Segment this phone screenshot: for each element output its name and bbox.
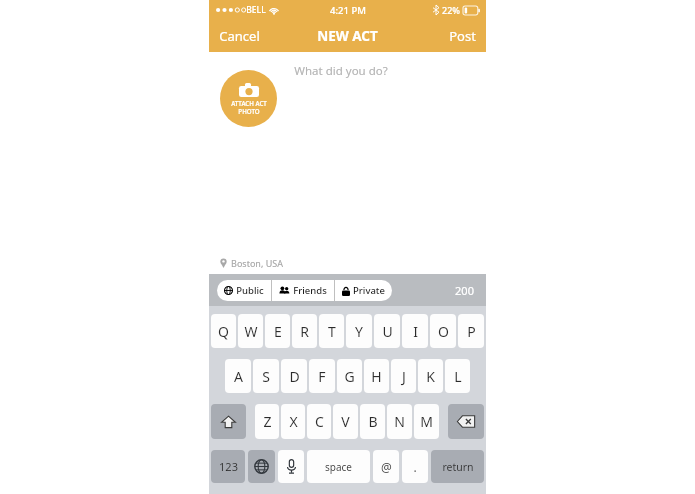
button[interactable]: Public — [217, 280, 271, 301]
button[interactable]: O — [430, 314, 456, 348]
button[interactable]: G — [337, 359, 362, 393]
staticText: R — [300, 322, 309, 341]
button[interactable]: C — [307, 404, 331, 439]
staticText: 200 — [455, 283, 474, 298]
button[interactable]: D — [281, 359, 307, 393]
staticText: S — [262, 367, 270, 386]
staticText: U — [382, 322, 393, 341]
button[interactable]: return — [431, 450, 484, 483]
staticText: T — [328, 322, 336, 341]
button[interactable]: P — [458, 314, 484, 348]
button[interactable]: L — [445, 359, 470, 393]
button[interactable]: U — [374, 314, 400, 348]
staticText: W — [244, 322, 258, 341]
button[interactable]: Q — [211, 314, 236, 348]
button[interactable]: Attach act photo — [220, 70, 277, 127]
button[interactable]: Friends — [272, 280, 334, 301]
staticText: Private — [353, 284, 385, 297]
staticText: 123 — [219, 459, 238, 474]
staticText: E — [274, 322, 282, 341]
staticText: 22% — [442, 4, 460, 16]
staticText: PHOTO — [238, 107, 260, 115]
button[interactable]: Z — [255, 404, 279, 439]
staticText: NEW ACT — [317, 27, 378, 45]
button[interactable]: K — [418, 359, 443, 393]
staticText: A — [234, 367, 243, 386]
staticText: Q — [218, 322, 229, 341]
button[interactable]: F — [309, 359, 335, 393]
button[interactable]: E — [265, 314, 290, 348]
button[interactable]: Cancel — [209, 22, 270, 50]
staticText: Y — [355, 322, 363, 341]
staticText: X — [289, 412, 298, 431]
staticText: M — [420, 412, 433, 431]
staticText: K — [426, 367, 435, 386]
staticText: I — [413, 322, 418, 341]
staticText: @ — [381, 459, 392, 475]
button[interactable]: X — [281, 404, 305, 439]
staticText: B — [368, 412, 378, 431]
staticText: J — [402, 367, 406, 386]
staticText: Friends — [293, 284, 327, 297]
button[interactable]: T — [319, 314, 344, 348]
button[interactable]: space — [307, 450, 370, 483]
staticText: Post — [449, 27, 476, 45]
button[interactable]: S — [253, 359, 279, 393]
staticText: . — [413, 459, 417, 475]
staticText: L — [454, 367, 462, 386]
button[interactable]: V — [333, 404, 358, 439]
staticText: return — [442, 460, 474, 474]
button[interactable]: Private — [335, 280, 392, 301]
staticText: What did you do? — [294, 63, 388, 79]
staticText: H — [371, 367, 382, 386]
staticText: BELL — [246, 4, 266, 16]
button[interactable]: R — [292, 314, 317, 348]
staticText: V — [341, 412, 350, 431]
button[interactable]: J — [391, 359, 416, 393]
button[interactable]: M — [414, 404, 439, 439]
staticText: G — [344, 367, 355, 386]
staticText: C — [315, 412, 324, 431]
staticText: P — [467, 322, 476, 341]
button[interactable]: Post — [439, 22, 486, 50]
button[interactable]: Y — [346, 314, 372, 348]
button[interactable]: W — [238, 314, 263, 348]
button[interactable]: Dictate — [278, 450, 304, 483]
button[interactable]: H — [364, 359, 389, 393]
button[interactable]: @ — [373, 450, 399, 483]
staticText: ATTACH ACT — [231, 99, 267, 107]
button[interactable]: Backspace — [448, 404, 484, 439]
staticText: Cancel — [219, 27, 260, 45]
button[interactable]: Shift — [211, 404, 246, 439]
staticText: D — [289, 367, 300, 386]
button[interactable]: A — [225, 359, 251, 393]
staticText: Z — [263, 412, 272, 431]
button[interactable]: B — [360, 404, 385, 439]
staticText: N — [394, 412, 405, 431]
staticText: 4:21 PM — [330, 4, 366, 17]
staticText: Public — [236, 284, 264, 297]
button[interactable]: . — [402, 450, 428, 483]
staticText: O — [438, 322, 449, 341]
button[interactable]: N — [387, 404, 412, 439]
staticText: Boston, USA — [231, 257, 283, 269]
button[interactable]: Switch keyboard — [248, 450, 275, 483]
staticText: space — [325, 460, 352, 474]
button[interactable]: 123 — [211, 450, 245, 483]
button[interactable]: I — [402, 314, 428, 348]
staticText: F — [318, 367, 326, 386]
